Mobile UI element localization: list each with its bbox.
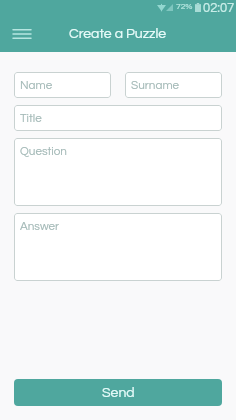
staticText: Surname — [131, 79, 180, 91]
button[interactable]: Question — [14, 138, 222, 206]
staticText: Title — [20, 112, 42, 124]
button[interactable]: Menu — [8, 20, 36, 48]
staticText: Question — [20, 145, 67, 157]
button[interactable]: Surname — [125, 72, 222, 98]
button[interactable]: Answer — [14, 213, 222, 281]
staticText: Answer — [20, 220, 60, 232]
staticText: 02:07 — [203, 1, 235, 14]
staticText: Create a Puzzle — [69, 27, 167, 41]
button[interactable]: Send — [14, 379, 222, 406]
button[interactable]: Title — [14, 105, 222, 131]
staticText: Name — [20, 79, 53, 91]
button[interactable]: Name — [14, 72, 111, 98]
staticText: Send — [102, 386, 135, 400]
staticText: 72% — [176, 2, 193, 11]
